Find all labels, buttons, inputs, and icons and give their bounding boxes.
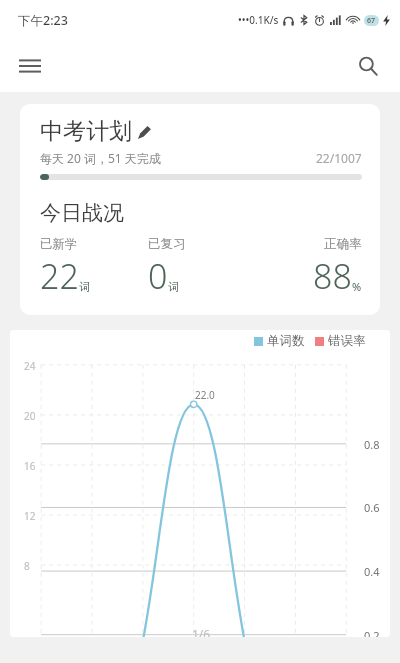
staticText: 1/6: [192, 626, 211, 637]
staticText: 错误率: [328, 333, 366, 349]
staticText: 每天 20 词，51 天完成: [40, 150, 161, 166]
staticText: 22: [40, 253, 79, 299]
staticText: 词: [168, 280, 179, 294]
staticText: •••0.1K/s: [238, 13, 279, 27]
button[interactable]: Search: [344, 42, 392, 90]
staticText: 今日战况: [40, 200, 124, 226]
button[interactable]: 中考计划: [20, 104, 380, 315]
staticText: 0.2: [364, 628, 380, 637]
staticText: 下午2:23: [18, 12, 68, 29]
staticText: 正确率: [324, 236, 362, 252]
staticText: 已复习: [148, 236, 186, 252]
button[interactable]: Edit plan: [133, 121, 155, 143]
staticText: 8: [24, 559, 30, 573]
staticText: 0: [148, 253, 168, 299]
staticText: 0.8: [364, 437, 380, 452]
staticText: 88: [313, 253, 352, 299]
staticText: 24: [24, 359, 36, 373]
staticText: 词: [79, 280, 90, 294]
button[interactable]: 单词数: [10, 330, 390, 637]
button[interactable]: Menu: [6, 42, 54, 90]
staticText: 22.0: [195, 388, 215, 402]
staticText: 0.6: [364, 500, 380, 515]
staticText: 0.4: [364, 564, 380, 579]
staticText: %: [352, 279, 362, 294]
staticText: 22/1007: [316, 150, 362, 166]
staticText: 已新学: [40, 236, 78, 252]
staticText: 67: [367, 16, 376, 26]
staticText: 单词数: [267, 333, 305, 349]
staticText: 12: [24, 509, 36, 523]
staticText: 16: [24, 459, 36, 473]
staticText: 20: [24, 409, 36, 423]
staticText: 中考计划: [40, 117, 132, 146]
